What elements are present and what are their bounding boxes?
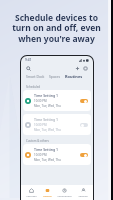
button[interactable]: Routines: [65, 74, 83, 79]
staticText: Mon, Tue, Wed, Thu: [34, 104, 61, 108]
staticText: Time Setting 1: [34, 117, 58, 122]
staticText: Devices: [43, 194, 52, 197]
staticText: Custom & others: [26, 139, 49, 143]
staticText: Settings: [78, 194, 88, 197]
staticText: Mon, Tue, Wed, Thu: [34, 128, 61, 132]
button[interactable]: Settings: [78, 185, 88, 197]
button[interactable]: Toggle routine: [80, 123, 88, 127]
button[interactable]: Time Setting 1: [23, 114, 91, 135]
staticText: 9:41: [25, 58, 32, 62]
staticText: Mon, Tue, Wed, Thu: [34, 158, 61, 162]
button[interactable]: Toggle routine: [80, 99, 88, 103]
button[interactable]: Devices: [43, 185, 52, 197]
button[interactable]: Spaces: [49, 74, 61, 79]
staticText: 10:30 PM: [34, 123, 47, 127]
button[interactable]: Automations: [57, 185, 72, 197]
button[interactable]: Cast: [83, 66, 88, 71]
button[interactable]: Search: [26, 66, 31, 71]
staticText: 10:30 PM: [34, 153, 47, 157]
staticText: Automations: [57, 194, 72, 197]
button[interactable]: Time Setting 1: [23, 144, 91, 165]
staticText: Schedule devices to turn on and off, eve…: [12, 12, 101, 45]
staticText: Time Setting 1: [34, 93, 58, 98]
button[interactable]: Smart Dock: [26, 74, 45, 79]
button[interactable]: Favorites: [26, 185, 37, 197]
staticText: 10:30 PM: [34, 99, 47, 103]
staticText: Favorites: [26, 194, 37, 197]
staticText: Scheduled: [26, 85, 41, 89]
button[interactable]: Add: [75, 66, 80, 71]
button[interactable]: Toggle routine: [80, 153, 88, 157]
staticText: Time Setting 1: [34, 147, 58, 152]
button[interactable]: Time Setting 1: [23, 90, 91, 111]
